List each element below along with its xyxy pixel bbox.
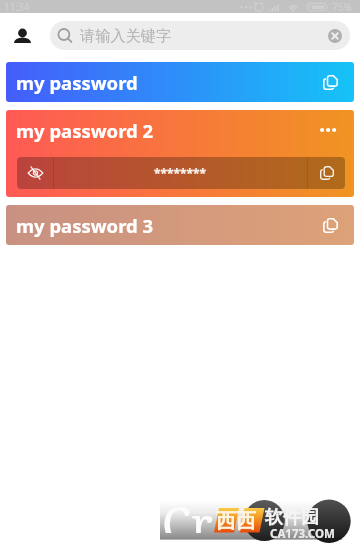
- staticText: my password 2: [16, 118, 154, 143]
- staticText: 西西: [216, 509, 256, 534]
- button[interactable]: my password 2: [6, 110, 354, 197]
- button[interactable]: my password 3: [6, 205, 354, 245]
- button[interactable]: Clear: [324, 25, 346, 47]
- staticText: 75%: [332, 0, 352, 13]
- button[interactable]: 请输入关键字: [50, 21, 350, 50]
- staticText: ********: [154, 165, 207, 181]
- staticText: 11:34: [4, 0, 30, 13]
- button[interactable]: Copy password: [308, 157, 345, 189]
- staticText: my password 3: [16, 213, 154, 238]
- button[interactable]: my password: [6, 62, 354, 102]
- staticText: CA173.COM: [270, 526, 335, 542]
- button[interactable]: Copy password: [318, 70, 342, 94]
- button[interactable]: Show password: [17, 157, 53, 189]
- staticText: my password: [16, 70, 138, 95]
- button[interactable]: More options: [315, 117, 341, 143]
- button[interactable]: Copy password: [318, 213, 342, 237]
- staticText: 请输入关键字: [80, 26, 172, 45]
- staticText: 软件园: [265, 506, 319, 529]
- button[interactable]: Account: [10, 23, 35, 48]
- staticText: Cr: [162, 492, 213, 533]
